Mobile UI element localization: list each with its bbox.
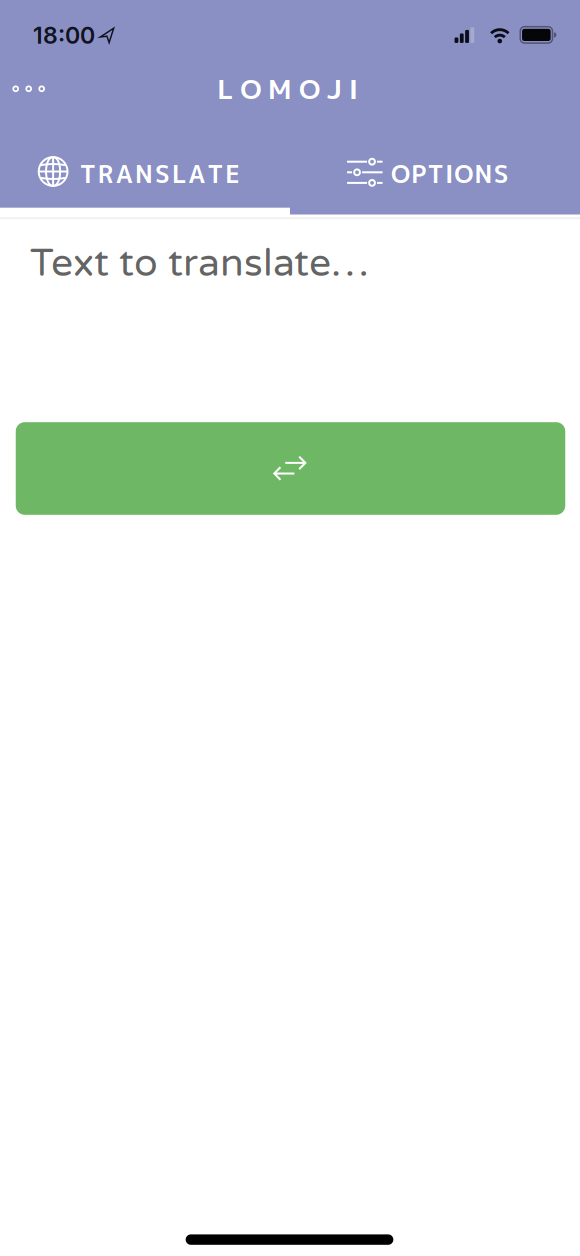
button[interactable]: Translate tab — [0, 140, 290, 206]
staticText: T — [80, 157, 96, 191]
staticText: T — [428, 157, 444, 191]
staticText: L — [172, 157, 186, 191]
staticText: M — [268, 70, 292, 108]
staticText: A — [116, 157, 133, 191]
button[interactable]: Options tab — [290, 140, 580, 206]
button[interactable]: More options — [0, 71, 57, 107]
staticText: N — [474, 157, 492, 191]
staticText: O — [391, 157, 410, 191]
staticText: S — [494, 157, 509, 191]
staticText: R — [98, 157, 114, 191]
staticText: T — [207, 157, 223, 191]
staticText: I — [349, 70, 358, 108]
staticText: O — [299, 70, 320, 108]
staticText: J — [327, 70, 342, 108]
staticText: E — [225, 157, 239, 191]
staticText: O — [240, 70, 261, 108]
button[interactable]: Translate — [16, 422, 565, 515]
staticText: S — [155, 157, 170, 191]
staticText: 18:00 — [33, 21, 95, 49]
staticText: Text to translate… — [30, 240, 369, 287]
staticText: O — [454, 157, 473, 191]
staticText: L — [217, 70, 233, 108]
staticText: A — [188, 157, 205, 191]
staticText: I — [445, 157, 453, 191]
staticText: N — [135, 157, 153, 191]
staticText: P — [411, 157, 426, 191]
